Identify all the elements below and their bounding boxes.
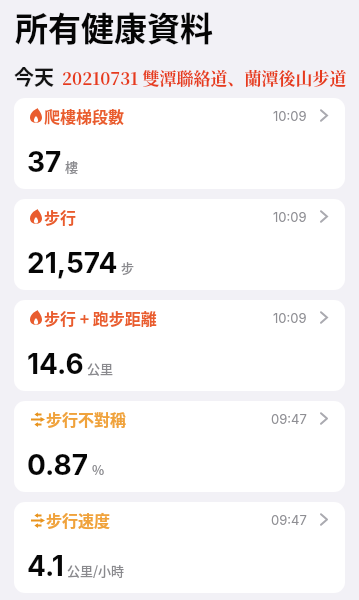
staticText: 步行 + 跑步距離 [44, 306, 157, 329]
staticText: 09:47 [271, 411, 307, 427]
staticText: % [92, 460, 105, 479]
staticText: 步 [121, 258, 135, 277]
staticText: 公里/小時 [67, 561, 125, 580]
staticText: 今天 [14, 62, 54, 91]
staticText: 公里 [87, 359, 114, 378]
button[interactable]: 步行速度 [14, 502, 345, 593]
staticText: 步行速度 [46, 508, 111, 531]
staticText: 09:47 [271, 512, 307, 528]
staticText: 21,574 [27, 246, 118, 280]
button[interactable]: 爬樓梯段數 [14, 98, 345, 189]
staticText: 10:09 [273, 209, 307, 225]
staticText: 14.6 [27, 347, 84, 381]
staticText: 10:09 [273, 310, 307, 326]
staticText: 所有健康資料 [15, 3, 213, 51]
button[interactable]: 步行 [14, 199, 345, 290]
staticText: 樓 [65, 157, 79, 176]
button[interactable]: 步行不對稱 [14, 401, 345, 492]
staticText: 步行 [44, 205, 77, 228]
staticText: 20210731 雙潭聯絡道、蘭潭後山步道 [62, 65, 347, 89]
staticText: 爬樓梯段數 [44, 104, 125, 127]
staticText: 步行不對稱 [46, 407, 127, 430]
staticText: 4.1 [27, 549, 64, 583]
button[interactable]: 步行 + 跑步距離 [14, 300, 345, 391]
staticText: 37 [27, 145, 62, 179]
staticText: 10:09 [273, 108, 307, 124]
staticText: 0.87 [27, 448, 89, 482]
